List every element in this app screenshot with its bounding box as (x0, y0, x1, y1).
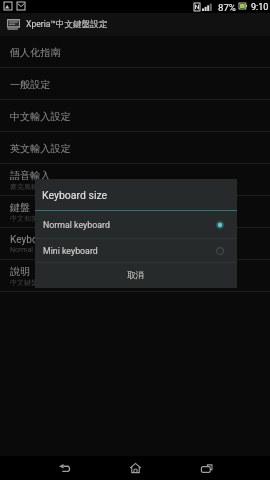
staticText: Normal keyboard (43, 220, 215, 230)
staticText: 中文鍵盤使用說明 (10, 278, 66, 287)
button[interactable]: 中文輸入設定 (0, 100, 270, 132)
button[interactable]: 取消 (35, 263, 237, 288)
staticText: 鍵盤 (10, 201, 31, 214)
button[interactable]: 個人化指南 (0, 36, 270, 68)
button[interactable]: Recent apps (194, 456, 219, 480)
staticText: 英文輸入設定 (10, 142, 71, 155)
staticText: 麥克風輸入設定 (10, 182, 59, 191)
button[interactable]: 說明 (0, 260, 270, 292)
staticText: 中文和英文鍵盤 (10, 214, 59, 223)
button[interactable]: 鍵盤 (0, 196, 270, 228)
button[interactable]: 一般設定 (0, 68, 270, 100)
staticText: 一般設定 (10, 78, 51, 91)
staticText: Keyboard size (10, 234, 73, 246)
button[interactable]: Keyboard size (0, 228, 270, 260)
staticText: 說明 (10, 265, 31, 278)
button[interactable]: Back (52, 456, 77, 480)
staticText: 語音輸入 (10, 169, 51, 182)
staticText: 9:10 (251, 2, 269, 13)
staticText: Keyboard size (42, 189, 108, 201)
staticText: 個人化指南 (10, 46, 61, 59)
button[interactable]: Home (123, 456, 148, 480)
staticText: 87% (218, 2, 236, 13)
staticText: Normal keyboard (10, 246, 64, 254)
staticText: Mini keyboard (43, 246, 215, 256)
staticText: Xperia™中文鍵盤設定 (26, 19, 108, 30)
staticText: 取消 (127, 270, 145, 281)
button[interactable]: 語音輸入 (0, 164, 270, 196)
button[interactable]: Mini keyboard (35, 239, 237, 263)
button[interactable]: Normal keyboard (35, 211, 237, 238)
staticText: 中文輸入設定 (10, 110, 71, 123)
button[interactable]: 英文輸入設定 (0, 132, 270, 164)
